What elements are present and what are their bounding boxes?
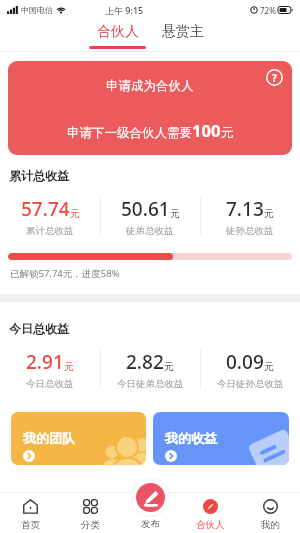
staticText: 57.74 — [21, 196, 70, 222]
staticText: 元 — [264, 360, 274, 373]
staticText: 我的收益 — [165, 430, 217, 446]
button[interactable]: 合伙人 — [196, 493, 225, 533]
staticText: 元 — [221, 125, 234, 141]
staticText: 100 — [192, 119, 221, 141]
button[interactable]: 我的收益 — [153, 412, 289, 465]
button[interactable]: 分类 — [81, 493, 100, 533]
staticText: 申请成为合伙人 — [106, 78, 194, 94]
staticText: ? — [272, 71, 277, 85]
button[interactable]: 合伙人 — [85, 20, 150, 52]
staticText: 申请下一级合伙人需要 — [67, 125, 192, 141]
staticText: 元 — [64, 360, 74, 373]
staticText: 今日总收益 — [9, 321, 69, 336]
staticText: 合伙人 — [196, 519, 225, 531]
staticText: 上午 9:15 — [105, 4, 144, 16]
staticText: 累计总收益 — [9, 168, 69, 183]
staticText: 今日总收益 — [26, 378, 74, 390]
staticText: 悬赏主 — [162, 23, 204, 41]
staticText: 徒弟总收益 — [126, 225, 174, 237]
staticText: 72% — [260, 5, 276, 16]
staticText: 今日徒弟总收益 — [117, 378, 184, 390]
staticText: 中国电信 — [21, 5, 53, 15]
button[interactable]: 帮助 — [266, 69, 283, 86]
staticText: 已解锁57.74元，进度58% — [10, 267, 120, 280]
button[interactable]: 申请成为合伙人 — [8, 61, 292, 155]
button[interactable]: 发布 — [136, 483, 165, 512]
staticText: 徒孙总收益 — [226, 225, 274, 237]
staticText: 发布 — [141, 518, 160, 530]
staticText: 0.09 — [226, 349, 264, 375]
staticText: 今日徒孙总收益 — [217, 378, 284, 390]
staticText: 我的团队 — [23, 430, 75, 446]
staticText: 累计总收益 — [26, 225, 74, 237]
staticText: 元 — [170, 207, 180, 220]
staticText: 合伙人 — [97, 23, 139, 41]
staticText: 元 — [70, 207, 80, 220]
button[interactable]: 我的 — [261, 493, 280, 533]
button[interactable]: 我的团队 — [11, 412, 146, 465]
staticText: 元 — [264, 207, 274, 220]
staticText: 我的 — [261, 519, 280, 531]
staticText: 元 — [164, 360, 174, 373]
button[interactable]: 发布 — [141, 493, 160, 533]
staticText: 2.82 — [126, 349, 164, 375]
button[interactable]: 首页 — [21, 493, 40, 533]
button[interactable]: 悬赏主 — [150, 20, 215, 52]
staticText: 50.61 — [121, 196, 170, 222]
staticText: 首页 — [21, 519, 40, 531]
staticText: 2.91 — [26, 349, 64, 375]
staticText: 7.13 — [226, 196, 264, 222]
staticText: 分类 — [81, 519, 100, 531]
